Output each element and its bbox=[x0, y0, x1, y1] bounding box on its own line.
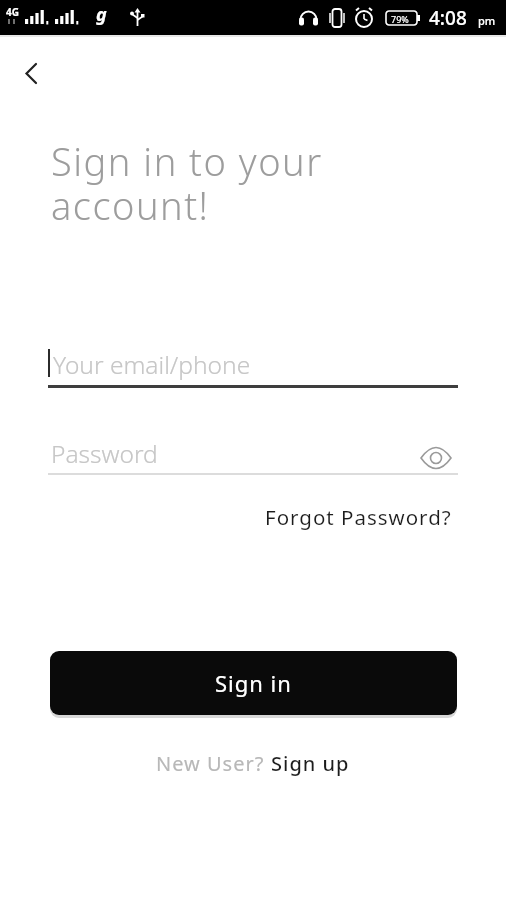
staticText: pm bbox=[478, 13, 496, 28]
staticText: Sign in to your account! bbox=[51, 135, 323, 231]
button[interactable] bbox=[12, 55, 48, 91]
staticText: Your email/phone bbox=[53, 348, 251, 381]
button[interactable]: Sign in bbox=[50, 651, 457, 715]
staticText: 4G bbox=[6, 5, 19, 19]
staticText: Password bbox=[51, 437, 158, 470]
staticText: 4:08 bbox=[429, 5, 467, 31]
staticText: Sign in bbox=[215, 668, 292, 698]
staticText: g bbox=[96, 2, 107, 27]
staticText: New User? bbox=[156, 750, 271, 777]
button[interactable]: Your email/phone bbox=[48, 345, 458, 389]
staticText: 79% bbox=[391, 13, 409, 25]
button[interactable]: Sign up bbox=[271, 750, 350, 777]
button[interactable]: Forgot Password? bbox=[265, 503, 452, 531]
button[interactable]: Password bbox=[48, 437, 458, 475]
